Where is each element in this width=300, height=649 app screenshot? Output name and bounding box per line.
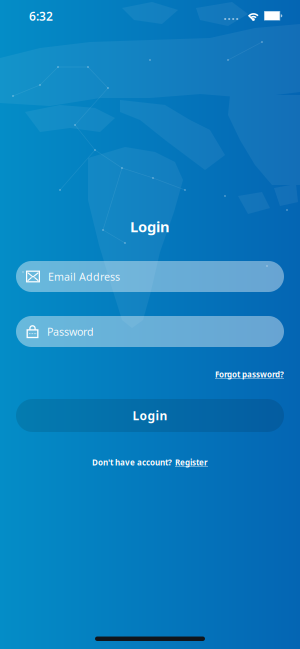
staticText: Don't have account?	[92, 457, 172, 468]
staticText: Register	[175, 457, 208, 468]
button[interactable]: Forgot password?	[215, 369, 284, 380]
button[interactable]: Login	[16, 399, 284, 432]
button[interactable]: Register	[175, 457, 208, 468]
staticText: Login	[130, 217, 170, 236]
button[interactable]: Password	[16, 316, 284, 347]
staticText: Password	[47, 324, 94, 339]
staticText: Forgot password?	[215, 369, 284, 380]
staticText: Email Address	[48, 269, 120, 284]
staticText: 6:32	[29, 8, 53, 24]
staticText: Login	[132, 407, 167, 423]
button[interactable]: Email Address	[16, 261, 284, 292]
